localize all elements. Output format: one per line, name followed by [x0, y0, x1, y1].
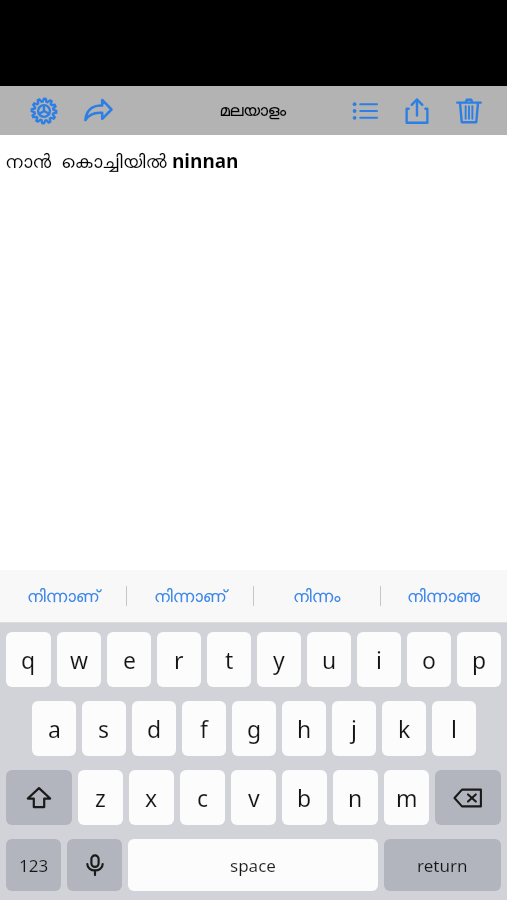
button[interactable]: m: [384, 770, 429, 825]
button[interactable]: s: [82, 701, 126, 756]
button[interactable]: നിന്നാണ്: [0, 570, 126, 622]
staticText: j: [351, 713, 357, 744]
staticText: നിന്നാണു: [407, 588, 481, 605]
staticText: t: [225, 644, 234, 675]
button[interactable]: space: [128, 839, 378, 891]
staticText: e: [123, 644, 136, 675]
button[interactable]: b: [282, 770, 327, 825]
staticText: c: [197, 782, 209, 813]
button[interactable]: w: [57, 632, 101, 687]
staticText: x: [145, 782, 158, 813]
button[interactable]: h: [282, 701, 326, 756]
button[interactable]: നിന്നാണു: [381, 570, 507, 622]
button[interactable]: 123: [6, 839, 61, 891]
staticText: k: [398, 713, 411, 744]
staticText: ninnan: [172, 148, 239, 174]
staticText: p: [472, 644, 487, 675]
button[interactable]: Delete: [449, 91, 489, 131]
button[interactable]: Share arrow: [78, 91, 118, 131]
button[interactable]: c: [180, 770, 225, 825]
button[interactable]: v: [231, 770, 276, 825]
button[interactable]: d: [132, 701, 176, 756]
button[interactable]: l: [432, 701, 476, 756]
button[interactable]: o: [407, 632, 451, 687]
staticText: b: [297, 782, 312, 813]
staticText: q: [21, 644, 36, 675]
button[interactable]: g: [232, 701, 276, 756]
button[interactable]: നിന്നം: [254, 570, 380, 622]
button[interactable]: t: [207, 632, 251, 687]
staticText: return: [417, 854, 468, 877]
button[interactable]: List: [345, 91, 385, 131]
button[interactable]: Dictate: [67, 839, 122, 891]
button[interactable]: i: [357, 632, 401, 687]
button[interactable]: a: [32, 701, 76, 756]
staticText: space: [230, 854, 276, 877]
button[interactable]: Backspace: [435, 770, 501, 825]
staticText: f: [200, 713, 208, 744]
staticText: y: [273, 644, 285, 675]
staticText: m: [396, 782, 418, 813]
staticText: മലയാളം: [220, 103, 287, 119]
button[interactable]: f: [182, 701, 226, 756]
staticText: നിന്നാണ്: [154, 588, 227, 605]
staticText: g: [247, 713, 262, 744]
button[interactable]: r: [157, 632, 201, 687]
staticText: d: [147, 713, 162, 744]
staticText: നാൻ കൊച്ചിയിൽ: [5, 148, 172, 174]
staticText: r: [174, 644, 184, 675]
button[interactable]: p: [457, 632, 501, 687]
button[interactable]: നിന്നാണ്: [127, 570, 253, 622]
button[interactable]: q: [6, 632, 51, 687]
staticText: 123: [19, 854, 49, 877]
staticText: o: [422, 644, 436, 675]
staticText: n: [348, 782, 363, 813]
button[interactable]: u: [307, 632, 351, 687]
button[interactable]: return: [384, 839, 501, 891]
staticText: l: [451, 713, 457, 744]
staticText: z: [95, 782, 106, 813]
staticText: h: [297, 713, 312, 744]
staticText: u: [322, 644, 337, 675]
staticText: s: [98, 713, 110, 744]
button[interactable]: Shift: [6, 770, 72, 825]
staticText: w: [70, 644, 89, 675]
button[interactable]: Share: [397, 91, 437, 131]
button[interactable]: k: [382, 701, 426, 756]
button[interactable]: n: [333, 770, 378, 825]
button[interactable]: Settings: [24, 91, 64, 131]
button[interactable]: e: [107, 632, 151, 687]
button[interactable]: j: [332, 701, 376, 756]
staticText: നിന്നം: [293, 588, 341, 605]
button[interactable]: x: [129, 770, 174, 825]
staticText: a: [48, 713, 61, 744]
staticText: i: [376, 644, 382, 675]
staticText: നിന്നാണ്: [27, 588, 100, 605]
button[interactable]: z: [78, 770, 123, 825]
button[interactable]: y: [257, 632, 301, 687]
staticText: v: [248, 782, 260, 813]
